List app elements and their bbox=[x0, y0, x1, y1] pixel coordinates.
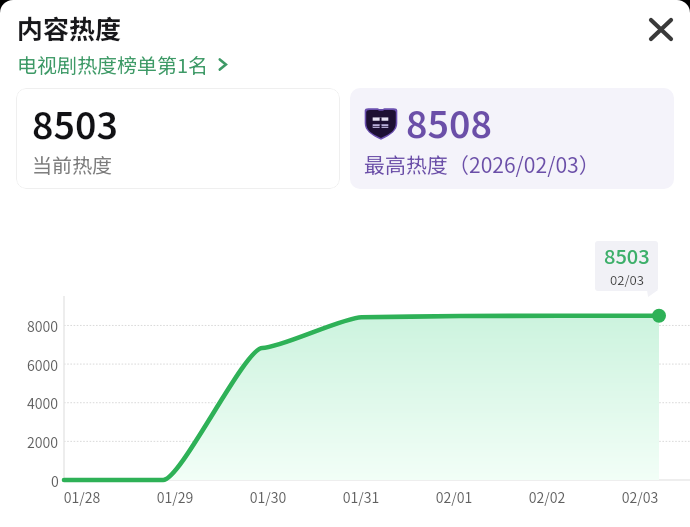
staticText: 01/28 bbox=[42, 487, 122, 507]
staticText: 2000 bbox=[27, 432, 59, 452]
staticText: 8503 bbox=[32, 96, 118, 150]
staticText: 0 bbox=[51, 471, 59, 491]
staticText: 01/29 bbox=[135, 487, 215, 507]
staticText: 02/03 bbox=[610, 270, 644, 289]
staticText: 8503 bbox=[604, 241, 650, 270]
staticText: 8000 bbox=[27, 316, 59, 336]
staticText: 02/03 bbox=[600, 487, 680, 507]
button[interactable]: 电视剧热度榜单第1名 bbox=[17, 50, 231, 79]
staticText: 当前热度 bbox=[32, 150, 112, 179]
staticText: 最高热度（2026/02/03） bbox=[364, 149, 600, 179]
staticText: 02/02 bbox=[507, 487, 587, 507]
staticText: 4000 bbox=[27, 393, 59, 413]
staticText: 02/01 bbox=[414, 487, 494, 507]
staticText: 6000 bbox=[27, 355, 59, 375]
staticText: 01/31 bbox=[321, 487, 401, 507]
button[interactable]: 8503 bbox=[16, 88, 340, 189]
button[interactable]: Close bbox=[639, 7, 683, 51]
staticText: 内容热度 bbox=[17, 9, 122, 47]
staticText: 01/30 bbox=[228, 487, 308, 507]
button[interactable]: 8508 bbox=[350, 88, 674, 189]
staticText: 8508 bbox=[406, 95, 492, 149]
staticText: 电视剧热度榜单第1名 bbox=[17, 50, 209, 79]
